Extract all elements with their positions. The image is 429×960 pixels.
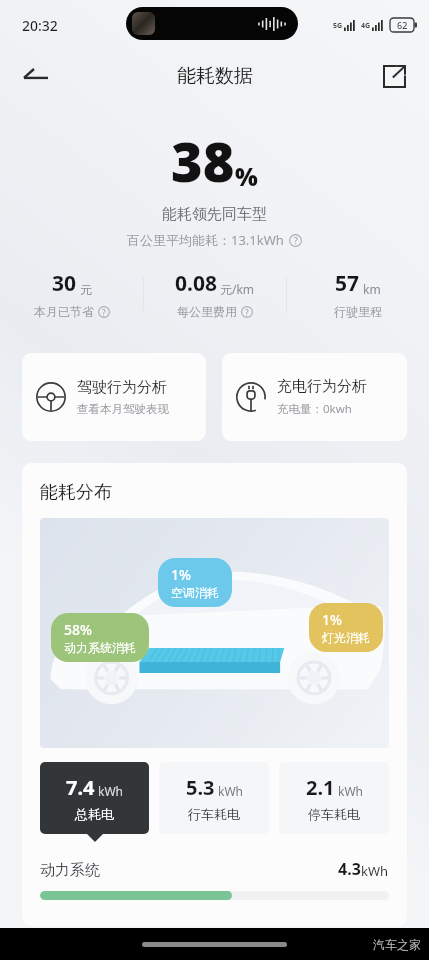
staticText: 4G (361, 21, 371, 31)
staticText: 0.08 (175, 269, 217, 298)
staticText: 灯光消耗 (322, 630, 370, 645)
staticText: 动力系统消耗 (64, 640, 136, 655)
staticText: 57 (335, 269, 360, 298)
staticText: 62 (397, 19, 408, 31)
staticText: 元 (80, 282, 92, 297)
staticText: 58% (64, 620, 92, 639)
staticText: 查看本月驾驶表现 (77, 402, 169, 416)
staticText: 动力系统 (40, 861, 100, 880)
staticText: 20:32 (22, 16, 58, 35)
staticText: 2.1 (306, 774, 335, 801)
button[interactable]: Info (241, 306, 253, 318)
staticText: 充电量：0kwh (277, 401, 352, 417)
staticText: 本月已节省 (34, 304, 94, 319)
staticText: kWh (218, 783, 243, 799)
button[interactable]: Info (98, 306, 110, 318)
staticText: 1% (171, 565, 191, 584)
staticText: % (235, 160, 258, 193)
staticText: 7.4 (66, 774, 95, 801)
staticText: kWh (338, 783, 363, 799)
staticText: 1% (322, 610, 342, 629)
staticText: 38 (171, 124, 235, 198)
staticText: 能耗领先同车型 (0, 205, 429, 224)
staticText: ? (245, 307, 249, 318)
staticText: kWh (98, 783, 123, 799)
staticText: ? (294, 235, 298, 247)
staticText: 能耗分布 (40, 481, 112, 504)
staticText: 行车耗电 (188, 806, 240, 822)
button[interactable]: 驾驶行为分析 (22, 353, 206, 441)
button[interactable]: 1% (158, 558, 232, 607)
staticText: 每公里费用 (177, 304, 237, 319)
staticText: kWh (361, 862, 389, 880)
staticText: 5G (333, 21, 343, 31)
staticText: 能耗数据 (177, 64, 253, 88)
button[interactable]: Info (289, 234, 302, 247)
button[interactable]: 0.08 (144, 269, 286, 319)
button[interactable]: 7.4 (40, 762, 149, 834)
staticText: 充电行为分析 (277, 377, 367, 396)
button[interactable]: Back (12, 53, 58, 99)
staticText: ? (102, 307, 106, 318)
staticText: 总耗电 (75, 806, 114, 822)
button[interactable]: 57 (287, 269, 429, 319)
button[interactable]: 30 (0, 269, 143, 319)
staticText: 元/km (220, 281, 255, 297)
button[interactable]: 1% (309, 603, 383, 652)
staticText: 汽车之家 (373, 937, 421, 952)
staticText: 行驶里程 (334, 304, 382, 319)
staticText: 5.3 (186, 774, 215, 801)
staticText: 驾驶行为分析 (77, 378, 167, 397)
button[interactable]: 5.3 (159, 762, 269, 834)
staticText: 空调消耗 (171, 585, 219, 600)
staticText: 4.3 (338, 858, 361, 880)
button[interactable]: 充电行为分析 (222, 353, 407, 441)
staticText: 30 (52, 269, 77, 298)
staticText: 百公里平均能耗：13.1kWh (127, 231, 284, 249)
button[interactable]: 2.1 (279, 762, 389, 834)
button[interactable]: 58% (51, 613, 149, 662)
staticText: 停车耗电 (308, 806, 360, 822)
button[interactable]: Share (373, 55, 415, 97)
staticText: km (363, 281, 381, 297)
